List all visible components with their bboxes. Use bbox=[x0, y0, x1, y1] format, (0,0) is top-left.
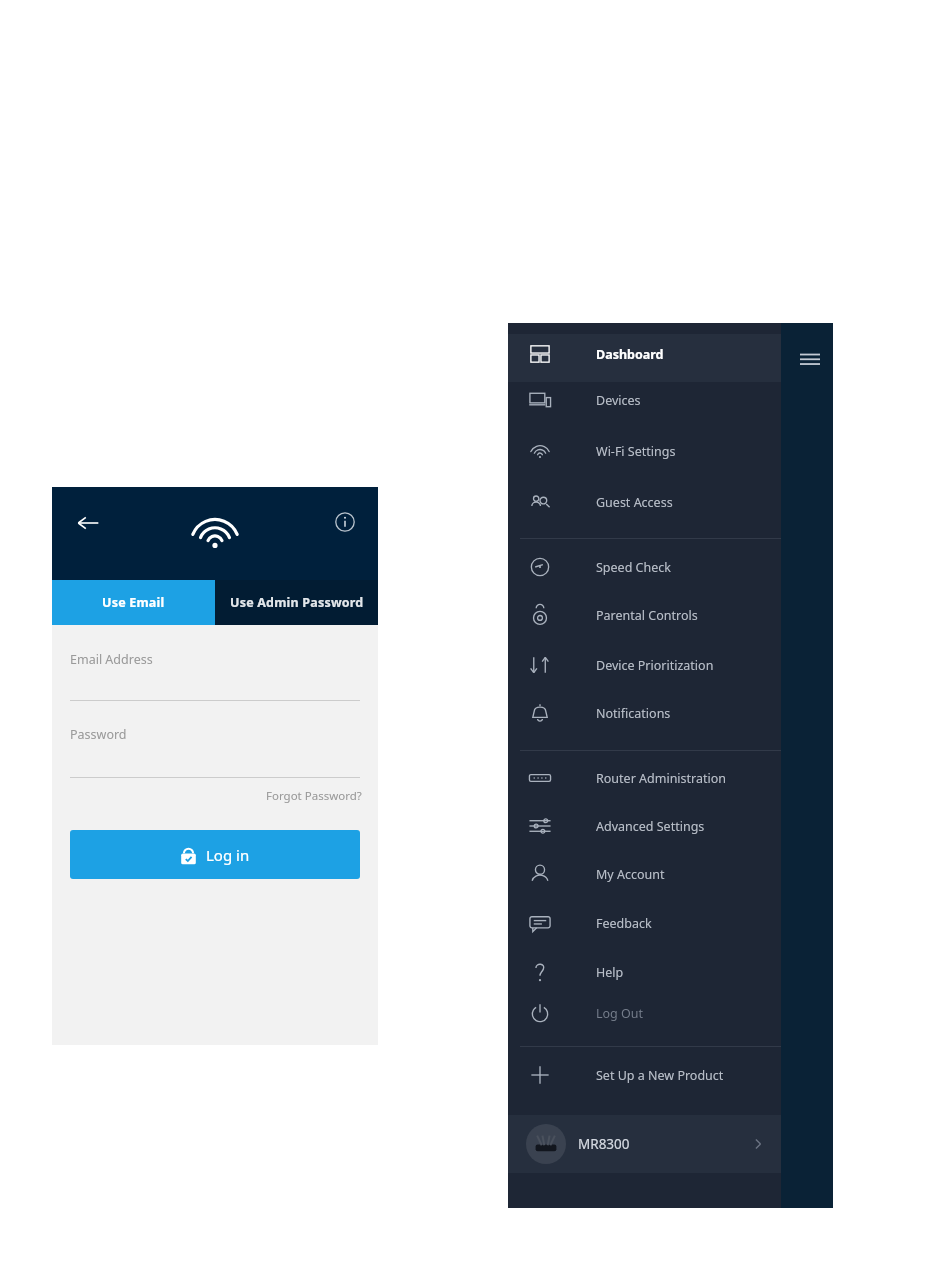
button[interactable]: Devices bbox=[508, 379, 781, 421]
button[interactable]: Speed Check bbox=[508, 546, 781, 588]
staticText: Forgot Password? bbox=[266, 788, 362, 804]
staticText: MR8300 bbox=[578, 1135, 630, 1153]
button[interactable]: Help bbox=[508, 951, 781, 993]
staticText: Email Address bbox=[70, 651, 153, 668]
staticText: Speed Check bbox=[596, 559, 671, 576]
button[interactable]: Use Email bbox=[52, 580, 215, 625]
button[interactable]: Feedback bbox=[508, 902, 781, 944]
button[interactable]: Wi-Fi Settings bbox=[508, 430, 781, 472]
button[interactable]: Device Prioritization bbox=[508, 644, 781, 686]
staticText: Dashboard bbox=[596, 346, 664, 363]
button[interactable]: MR8300 bbox=[508, 1115, 781, 1173]
button[interactable]: Back bbox=[66, 501, 110, 545]
staticText: Notifications bbox=[596, 705, 671, 722]
button[interactable]: Forgot Password? bbox=[262, 783, 366, 809]
button[interactable]: Router Administration bbox=[508, 757, 781, 799]
button[interactable]: Parental Controls bbox=[508, 594, 781, 636]
staticText: Device Prioritization bbox=[596, 657, 714, 674]
staticText: Devices bbox=[596, 392, 641, 409]
button[interactable]: Log in bbox=[70, 830, 360, 879]
staticText: Advanced Settings bbox=[596, 818, 705, 835]
button[interactable]: Notifications bbox=[508, 692, 781, 734]
staticText: Use Admin Password bbox=[230, 594, 364, 611]
staticText: Set Up a New Product bbox=[596, 1067, 724, 1084]
button[interactable]: Use Admin Password bbox=[215, 580, 378, 625]
button[interactable]: Info bbox=[324, 501, 366, 543]
staticText: Use Email bbox=[102, 594, 165, 611]
staticText: Log in bbox=[206, 845, 250, 865]
staticText: Router Administration bbox=[596, 770, 727, 787]
staticText: Log Out bbox=[596, 1005, 644, 1022]
staticText: My Account bbox=[596, 866, 665, 883]
button[interactable]: Advanced Settings bbox=[508, 805, 781, 847]
staticText: Password bbox=[70, 726, 127, 743]
staticText: Wi-Fi Settings bbox=[596, 443, 676, 460]
button[interactable]: Log Out bbox=[508, 992, 781, 1034]
button[interactable]: Dashboard bbox=[508, 333, 781, 375]
staticText: Parental Controls bbox=[596, 607, 698, 624]
button[interactable]: Guest Access bbox=[508, 481, 781, 523]
staticText: Feedback bbox=[596, 915, 652, 932]
staticText: Guest Access bbox=[596, 494, 673, 511]
staticText: Help bbox=[596, 964, 624, 981]
button[interactable]: Set Up a New Product bbox=[508, 1054, 781, 1096]
button[interactable]: Menu bbox=[789, 338, 831, 380]
button[interactable]: My Account bbox=[508, 853, 781, 895]
